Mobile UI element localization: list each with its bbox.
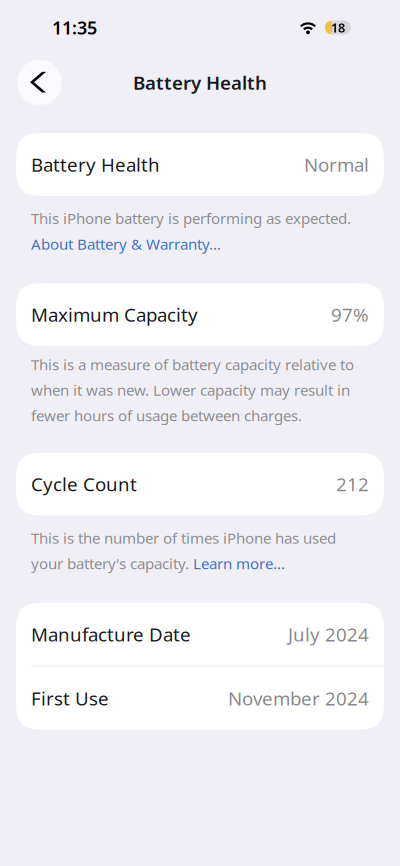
staticText: Cycle Count: [31, 471, 137, 497]
staticText: About Battery & Warranty...: [31, 233, 221, 254]
button[interactable]: Back: [17, 60, 62, 105]
staticText: November 2024: [228, 685, 369, 711]
staticText: when it was new. Lower capacity may resu…: [31, 380, 350, 400]
staticText: Battery Health: [31, 152, 160, 177]
staticText: First Use: [31, 685, 109, 711]
staticText: 97%: [331, 302, 369, 327]
button[interactable]: About Battery & Warranty...: [31, 233, 221, 254]
staticText: Maximum Capacity: [31, 302, 198, 327]
staticText: your battery's capacity.: [31, 553, 193, 574]
staticText: fewer hours of usage between charges.: [31, 405, 302, 426]
staticText: This is a measure of battery capacity re…: [31, 354, 354, 374]
staticText: This is the number of times iPhone has u…: [31, 528, 336, 548]
staticText: 18: [331, 19, 345, 36]
staticText: 11:35: [52, 15, 97, 40]
staticText: Normal: [304, 152, 369, 177]
staticText: Battery Health: [133, 70, 267, 95]
staticText: Manufacture Date: [31, 621, 191, 647]
staticText: This iPhone battery is performing as exp…: [31, 208, 351, 228]
staticText: Learn more...: [193, 553, 285, 574]
staticText: July 2024: [288, 621, 369, 647]
button[interactable]: Learn more...: [193, 553, 285, 574]
staticText: 212: [336, 471, 369, 497]
